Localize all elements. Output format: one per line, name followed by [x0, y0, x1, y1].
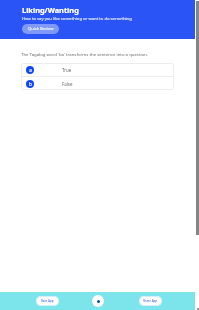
button[interactable]: a	[21, 63, 174, 76]
button[interactable]: Share App	[139, 296, 162, 306]
button[interactable]: Rate App	[36, 296, 59, 306]
staticText: How to say you like something or want to…	[22, 16, 132, 22]
button[interactable]: b	[21, 77, 174, 90]
staticText: The Tagalog word 'ba' transforms the sen…	[21, 51, 148, 57]
staticText: a	[29, 67, 32, 73]
button[interactable]: Quick Review	[22, 24, 59, 34]
staticText: Quick Review	[28, 26, 54, 32]
staticText: b	[29, 81, 32, 87]
staticText: Share App	[143, 299, 158, 303]
staticText: True	[62, 67, 72, 73]
staticText: Liking/Wanting	[22, 5, 79, 15]
staticText: Rate App	[41, 299, 54, 303]
button[interactable]: Home	[92, 295, 104, 307]
staticText: False	[62, 81, 73, 87]
